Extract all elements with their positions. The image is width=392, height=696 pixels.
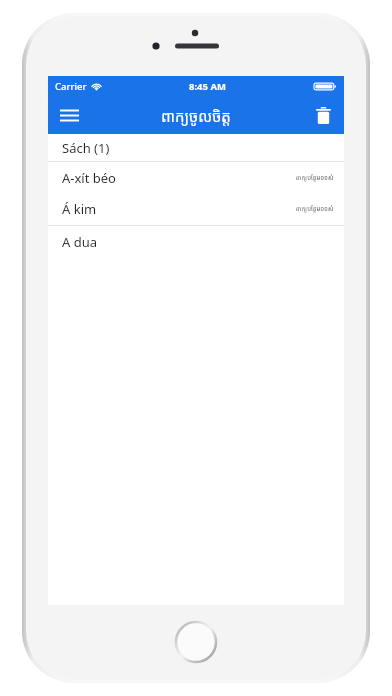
- staticText: 8:45 AM: [189, 80, 226, 93]
- button[interactable]: Á kim: [48, 193, 344, 225]
- staticText: ពាក្យចូលចិត្ត: [48, 106, 344, 126]
- button[interactable]: A-xít béo: [48, 162, 344, 193]
- staticText: A-xít béo: [62, 169, 116, 187]
- staticText: A dua: [62, 233, 98, 251]
- button[interactable]: Delete: [302, 97, 344, 134]
- button[interactable]: Sách (1): [48, 134, 344, 161]
- button[interactable]: Menu: [48, 97, 90, 134]
- staticText: ពាក្យបន្ថែម១១សំ: [296, 174, 334, 182]
- staticText: Sách (1): [62, 139, 110, 157]
- staticText: ពាក្យបន្ថែម១១សំ: [296, 205, 334, 213]
- staticText: Carrier: [55, 80, 87, 93]
- staticText: Á kim: [62, 200, 97, 218]
- button[interactable]: A dua: [48, 226, 344, 257]
